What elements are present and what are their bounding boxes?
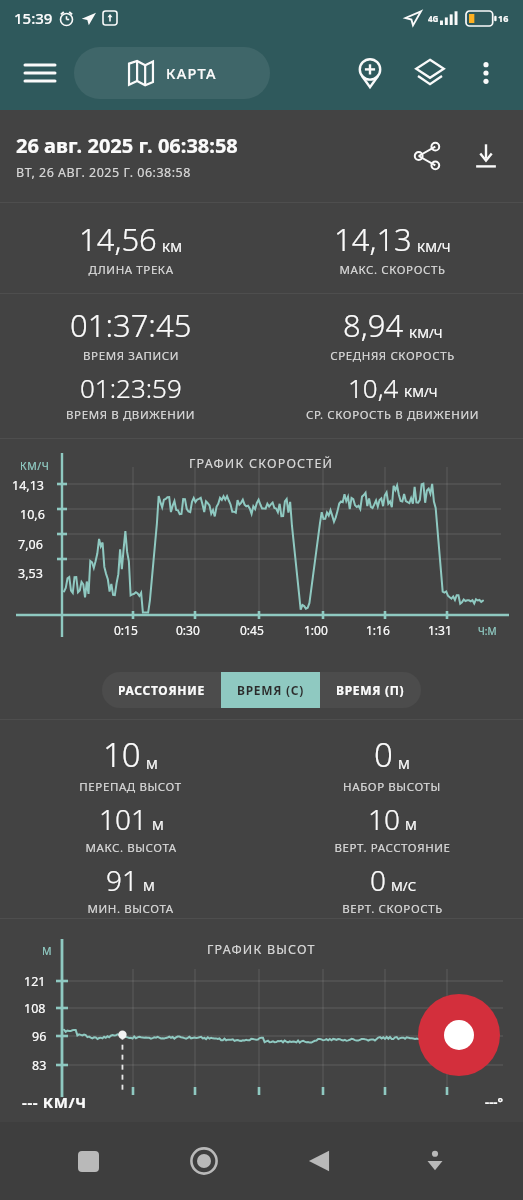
staticText: 83 — [32, 1057, 47, 1074]
staticText: ВЕРТ. РАССТОЯНИЕ — [334, 840, 451, 856]
staticText: ВРЕМЯ В ДВИЖЕНИИ — [66, 407, 195, 423]
staticText: М — [146, 755, 158, 773]
button[interactable]: ГРАФИК ВЫСОТ — [0, 919, 523, 1122]
staticText: РАССТОЯНИЕ — [118, 682, 205, 698]
staticText: 10 — [368, 800, 400, 838]
staticText: СР. СКОРОСТЬ В ДВИЖЕНИИ — [306, 407, 479, 423]
button[interactable]: ГРАФИК СКОРОСТЕЙ — [0, 439, 523, 661]
staticText: 108 — [24, 1000, 46, 1017]
staticText: М — [152, 816, 164, 834]
staticText: 0 — [370, 861, 386, 899]
staticText: КМ/Ч — [404, 383, 438, 401]
staticText: НАБОР ВЫСОТЫ — [343, 779, 441, 795]
staticText: 0:15 — [114, 622, 138, 638]
button[interactable]: 26 авг. 2025 г. 06:38:58 — [0, 110, 523, 202]
staticText: 15:39 — [14, 8, 53, 28]
button[interactable]: 14,13 — [261, 203, 523, 293]
staticText: СРЕДНЯЯ СКОРОСТЬ — [330, 348, 455, 364]
staticText: М — [398, 755, 410, 773]
staticText: 01:37:45 — [70, 304, 192, 346]
button[interactable]: ВРЕМЯ (С) — [221, 672, 320, 708]
staticText: 1:31 — [428, 622, 452, 638]
staticText: КМ/Ч — [409, 324, 443, 342]
button[interactable]: Home — [176, 1133, 232, 1189]
staticText: 121 — [24, 973, 46, 990]
button[interactable]: 01:37:45 — [0, 294, 261, 438]
button[interactable]: ВРЕМЯ (П) — [320, 672, 421, 708]
button[interactable]: Share — [401, 130, 453, 182]
button[interactable]: 10 — [0, 720, 261, 918]
staticText: ВРЕМЯ (П) — [336, 682, 405, 698]
staticText: 16 — [498, 12, 509, 24]
button[interactable]: 8,94 — [261, 294, 523, 438]
staticText: 14,13 — [12, 477, 44, 494]
staticText: --- КМ/Ч — [22, 1092, 87, 1112]
staticText: ПЕРЕПАД ВЫСОТ — [79, 779, 182, 795]
staticText: М/С — [391, 877, 416, 895]
staticText: 0:30 — [176, 622, 200, 638]
staticText: 10 — [103, 732, 141, 777]
staticText: ВРЕМЯ ЗАПИСИ — [83, 348, 179, 364]
button[interactable]: Download — [463, 130, 509, 182]
staticText: 10,4 — [348, 370, 399, 405]
staticText: 96 — [32, 1028, 47, 1045]
staticText: ---° — [485, 1093, 503, 1111]
button[interactable]: Back — [291, 1133, 347, 1189]
staticText: КМ — [162, 238, 182, 256]
staticText: МИН. ВЫСОТА — [87, 901, 174, 917]
staticText: 0:45 — [240, 622, 264, 638]
staticText: 3,53 — [18, 565, 43, 582]
staticText: 91 — [106, 861, 138, 899]
button[interactable]: 14,56 — [0, 203, 261, 293]
button[interactable]: Recent apps — [60, 1133, 116, 1189]
staticText: КАРТА — [166, 63, 217, 83]
staticText: 101 — [99, 800, 147, 838]
staticText: Ч:М — [478, 624, 497, 638]
staticText: М — [405, 816, 417, 834]
staticText: 7,06 — [18, 536, 43, 553]
button[interactable]: Add marker — [347, 50, 393, 96]
staticText: 10,6 — [20, 506, 45, 523]
staticText: ВЕРТ. СКОРОСТЬ — [342, 901, 443, 917]
staticText: 1:00 — [304, 622, 328, 638]
button[interactable]: 0 — [261, 720, 523, 918]
button[interactable]: Menu — [16, 49, 64, 97]
staticText: 26 авг. 2025 г. 06:38:58 — [16, 132, 238, 159]
staticText: 01:23:59 — [80, 370, 182, 405]
button[interactable]: РАССТОЯНИЕ — [102, 672, 221, 708]
staticText: КМ/Ч — [417, 238, 451, 256]
staticText: 14,56 — [79, 218, 157, 260]
button[interactable]: More options — [465, 52, 507, 94]
staticText: КМ/Ч — [20, 459, 50, 473]
staticText: М — [143, 877, 155, 895]
button[interactable]: КАРТА — [74, 47, 270, 99]
staticText: 14,13 — [334, 218, 412, 260]
button[interactable]: Hide navigation bar — [407, 1133, 463, 1189]
staticText: 0 — [374, 732, 393, 777]
staticText: ГРАФИК ВЫСОТ — [207, 941, 316, 958]
staticText: 1:16 — [366, 622, 390, 638]
staticText: 4G — [428, 13, 439, 24]
button[interactable]: Map layers — [407, 50, 453, 96]
staticText: М — [42, 944, 52, 958]
staticText: ДЛИНА ТРЕКА — [88, 262, 174, 278]
staticText: ГРАФИК СКОРОСТЕЙ — [189, 455, 334, 472]
staticText: ВРЕМЯ (С) — [237, 682, 304, 698]
staticText: 8,94 — [343, 304, 404, 346]
staticText: ВТ, 26 АВГ. 2025 Г. 06:38:58 — [16, 164, 191, 181]
staticText: МАКС. ВЫСОТА — [85, 840, 177, 856]
staticText: МАКС. СКОРОСТЬ — [339, 262, 446, 278]
button[interactable]: Record track — [418, 994, 500, 1076]
